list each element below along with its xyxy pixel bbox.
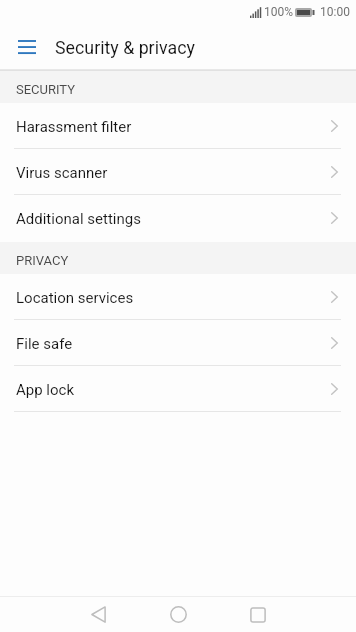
staticText: 100%: [264, 5, 294, 19]
staticText: Virus scanner: [16, 164, 108, 182]
button[interactable]: Back: [68, 597, 128, 632]
button[interactable]: Home: [148, 597, 208, 632]
staticText: File safe: [16, 335, 73, 353]
staticText: 10:00: [320, 5, 350, 19]
button[interactable]: App lock: [0, 366, 356, 412]
button[interactable]: Harassment filter: [0, 103, 356, 149]
button[interactable]: Open navigation menu: [8, 24, 46, 69]
staticText: App lock: [16, 381, 75, 399]
staticText: Harassment filter: [16, 118, 132, 136]
staticText: Location services: [16, 289, 134, 307]
button[interactable]: File safe: [0, 320, 356, 366]
staticText: Security & privacy: [55, 37, 195, 58]
staticText: SECURITY: [16, 82, 76, 97]
button[interactable]: Recent apps: [228, 597, 288, 632]
staticText: PRIVACY: [16, 253, 69, 268]
button[interactable]: Location services: [0, 274, 356, 320]
button[interactable]: Virus scanner: [0, 149, 356, 195]
button[interactable]: Additional settings: [0, 195, 356, 242]
staticText: Additional settings: [16, 210, 141, 228]
